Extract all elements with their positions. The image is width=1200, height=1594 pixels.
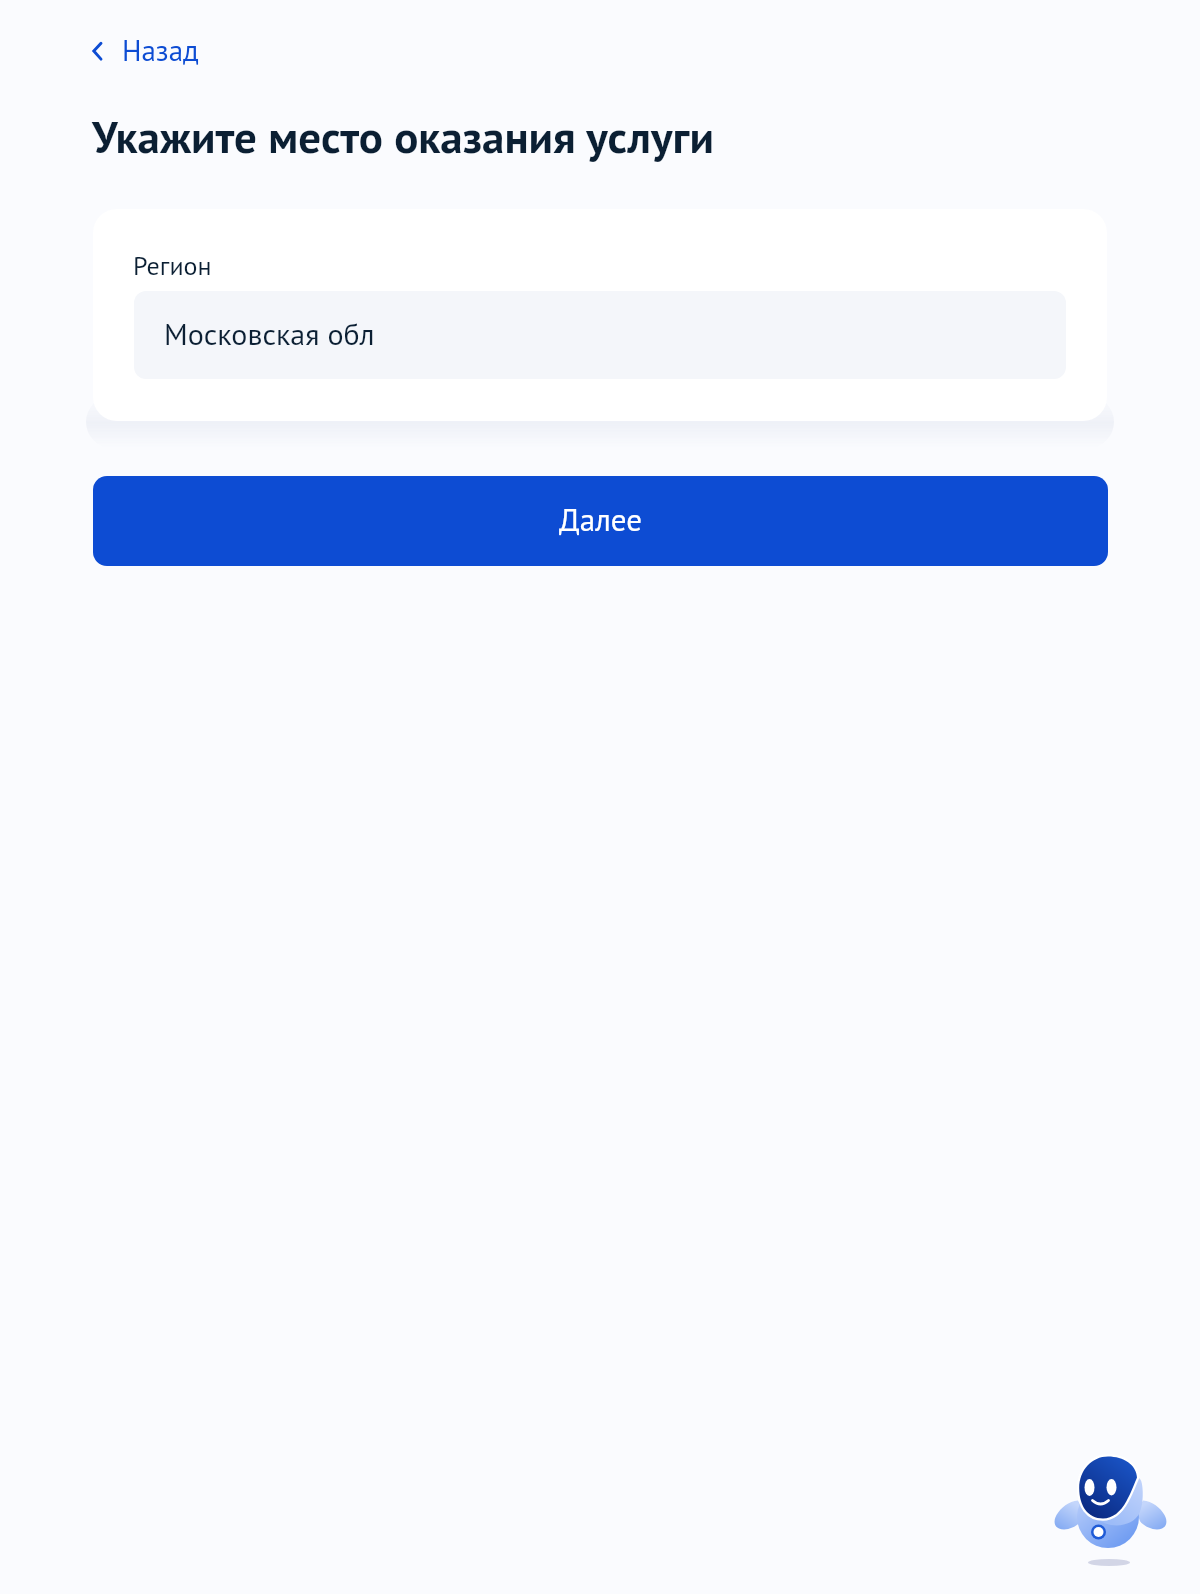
button[interactable]: Московская обл	[134, 291, 1066, 379]
staticText: Назад	[122, 31, 199, 69]
staticText: Регион	[133, 249, 212, 283]
button[interactable]: Далее	[93, 476, 1108, 566]
button[interactable]: Назад	[84, 26, 214, 76]
staticText: Далее	[559, 499, 642, 539]
button[interactable]: Робот Макс — помощник	[1048, 1447, 1176, 1575]
staticText: Укажите место оказания услуги	[92, 107, 714, 165]
staticText: Московская обл	[164, 314, 375, 353]
